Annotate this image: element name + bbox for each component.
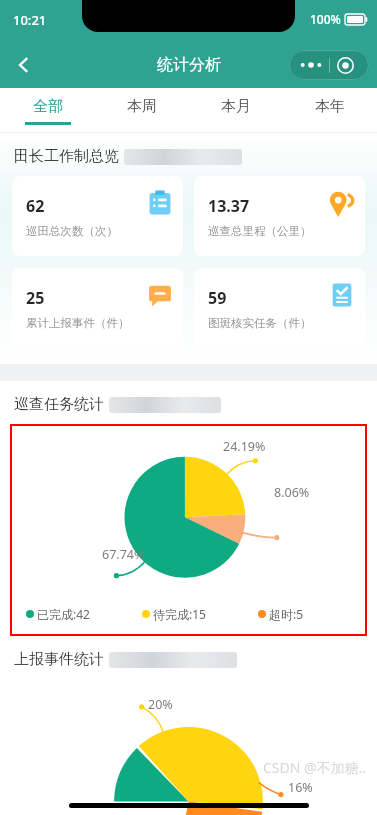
staticText: 67.74%: [102, 546, 145, 563]
button[interactable]: 本年: [283, 88, 377, 133]
staticText: 图斑核实任务（件）: [208, 316, 312, 330]
button[interactable]: 本周: [95, 88, 189, 133]
staticText: 巡查总里程（公里）: [208, 224, 312, 238]
staticText: CSDN @不加糖..: [263, 758, 367, 777]
staticText: 62: [26, 195, 45, 217]
staticText: 巡查任务统计: [14, 395, 104, 414]
staticText: 本月: [221, 97, 251, 116]
staticText: 累计上报事件（件）: [26, 316, 130, 330]
staticText: 8.06%: [274, 484, 310, 501]
staticText: 全部: [33, 97, 63, 116]
button[interactable]: 25: [12, 268, 183, 348]
staticText: 田长工作制总览: [14, 147, 119, 166]
staticText: 巡田总次数（次）: [26, 224, 118, 238]
staticText: 统计分析: [157, 55, 221, 75]
button[interactable]: 13.37: [194, 176, 365, 256]
staticText: 13.37: [208, 195, 250, 217]
staticText: 100%: [310, 11, 341, 27]
button[interactable]: Mini program menu: [289, 50, 369, 80]
staticText: 本年: [315, 97, 345, 116]
staticText: 20%: [148, 696, 173, 713]
staticText: 待完成:15: [153, 606, 206, 622]
staticText: 超时:5: [269, 606, 304, 622]
staticText: 已完成:42: [37, 606, 90, 622]
staticText: 24.19%: [223, 438, 266, 455]
button[interactable]: 本月: [189, 88, 283, 133]
staticText: 上报事件统计: [14, 650, 104, 669]
button[interactable]: Back: [4, 45, 44, 85]
button[interactable]: 全部: [0, 88, 95, 133]
staticText: 10:21: [13, 11, 47, 29]
staticText: 本周: [127, 97, 157, 116]
staticText: 59: [208, 287, 227, 309]
button[interactable]: 59: [194, 268, 365, 348]
staticText: 25: [26, 287, 45, 309]
staticText: 16%: [288, 779, 313, 796]
button[interactable]: 62: [12, 176, 183, 256]
